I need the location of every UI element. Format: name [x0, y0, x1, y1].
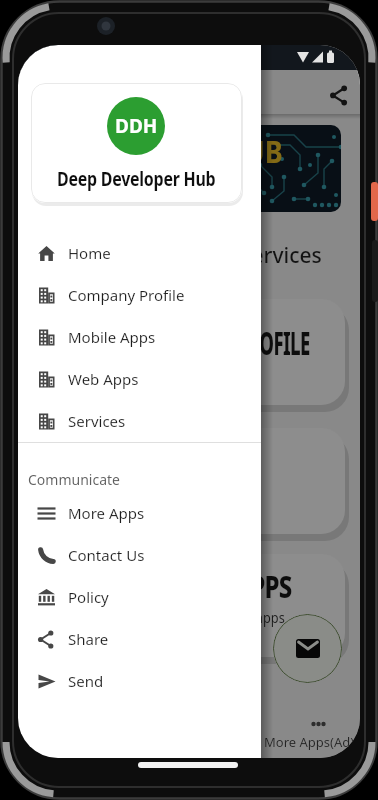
staticText: Deep Developer Hub — [57, 166, 216, 192]
staticText: WEB APPS — [178, 566, 292, 606]
staticText: development apps — [174, 607, 285, 627]
button[interactable]: Company Profile — [18, 274, 261, 316]
staticText: DDH — [115, 113, 158, 139]
staticText: Share — [68, 629, 109, 649]
button[interactable]: More Apps(Ad) — [245, 732, 355, 752]
staticText: More Apps — [68, 503, 145, 523]
staticText: Web Apps — [68, 369, 139, 389]
button[interactable] — [324, 80, 352, 108]
staticText: Policy — [68, 587, 109, 607]
staticText: HUB — [224, 131, 283, 169]
button[interactable] — [273, 614, 342, 683]
button[interactable]: Web Apps — [18, 358, 261, 400]
staticText: Home — [68, 243, 111, 263]
button[interactable]: Policy — [18, 576, 261, 618]
button[interactable]: Contact Us — [18, 534, 261, 576]
staticText: Company Profile — [68, 285, 185, 305]
button[interactable]: COMPANY PROFILE — [33, 299, 345, 405]
staticText: Send — [68, 671, 104, 691]
staticText: More Apps(Ad) — [264, 733, 355, 751]
staticText: COMPANY PROFILE — [141, 321, 310, 363]
staticText: Contact Us — [68, 545, 145, 565]
button[interactable]: WEB APPS — [33, 554, 345, 657]
button[interactable]: More Apps — [18, 492, 261, 534]
button[interactable]: Share — [18, 618, 261, 660]
staticText: Communicate — [28, 470, 120, 489]
staticText: Mobile Apps — [68, 327, 156, 347]
staticText: Our Services — [196, 241, 322, 269]
staticText: Services — [68, 411, 126, 431]
staticText: MOBILE APPS — [111, 458, 255, 500]
button[interactable]: MOBILE APPS — [33, 428, 345, 534]
button[interactable]: Services — [18, 400, 261, 442]
button[interactable]: DDH — [31, 83, 242, 203]
button[interactable]: Mobile Apps — [18, 316, 261, 358]
button[interactable]: Send — [18, 660, 261, 702]
button[interactable]: Home — [18, 232, 261, 274]
